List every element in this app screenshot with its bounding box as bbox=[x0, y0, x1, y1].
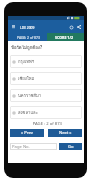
button[interactable]: Share bbox=[75, 23, 83, 31]
staticText: Go bbox=[68, 144, 74, 150]
staticText: Next » bbox=[59, 130, 72, 136]
button[interactable]: สงขลาและ bbox=[10, 106, 82, 119]
button[interactable]: Help bbox=[67, 23, 75, 31]
button[interactable]: นครราชสีมา bbox=[10, 89, 82, 102]
button[interactable]: Menu bbox=[9, 22, 18, 31]
staticText: สงขลาและ bbox=[18, 109, 38, 116]
button[interactable]: Go bbox=[59, 143, 82, 150]
staticText: นครราชสีมา bbox=[18, 92, 42, 99]
staticText: กรุงเทพฯ bbox=[18, 58, 35, 65]
button[interactable]: เชียงใหม่ bbox=[10, 72, 82, 85]
staticText: PAGE: 2 of 873 bbox=[17, 35, 40, 40]
button[interactable]: กรุงเทพฯ bbox=[10, 55, 82, 68]
staticText: เชียงใหม่ bbox=[18, 75, 35, 82]
staticText: « Prev bbox=[21, 130, 33, 136]
staticText: Page No. bbox=[12, 144, 30, 150]
staticText: SCORE 1/2 bbox=[55, 35, 73, 40]
button[interactable]: « Prev bbox=[10, 129, 44, 137]
staticText: LDE 2009 bbox=[20, 25, 35, 29]
button[interactable]: Next » bbox=[48, 129, 82, 137]
staticText: ข้อใดไม่ถูกต้อง? bbox=[11, 44, 43, 51]
staticText: PAGE : 2 of 873 bbox=[8, 121, 62, 127]
